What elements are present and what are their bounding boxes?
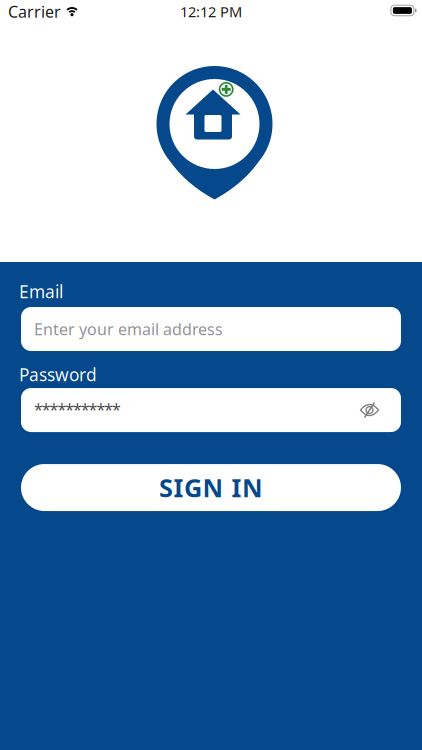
button[interactable]: *********** (21, 388, 401, 432)
staticText: Carrier (8, 1, 61, 22)
staticText: 12:12 PM (180, 2, 242, 21)
staticText: SIGN IN (159, 470, 263, 505)
staticText: Password (19, 363, 97, 386)
button[interactable]: Show password (360, 402, 379, 418)
button[interactable]: SIGN IN (21, 464, 401, 511)
button[interactable]: Enter your email address (21, 307, 401, 351)
staticText: *********** (34, 398, 121, 420)
staticText: Enter your email address (34, 318, 223, 340)
staticText: Email (19, 280, 63, 303)
